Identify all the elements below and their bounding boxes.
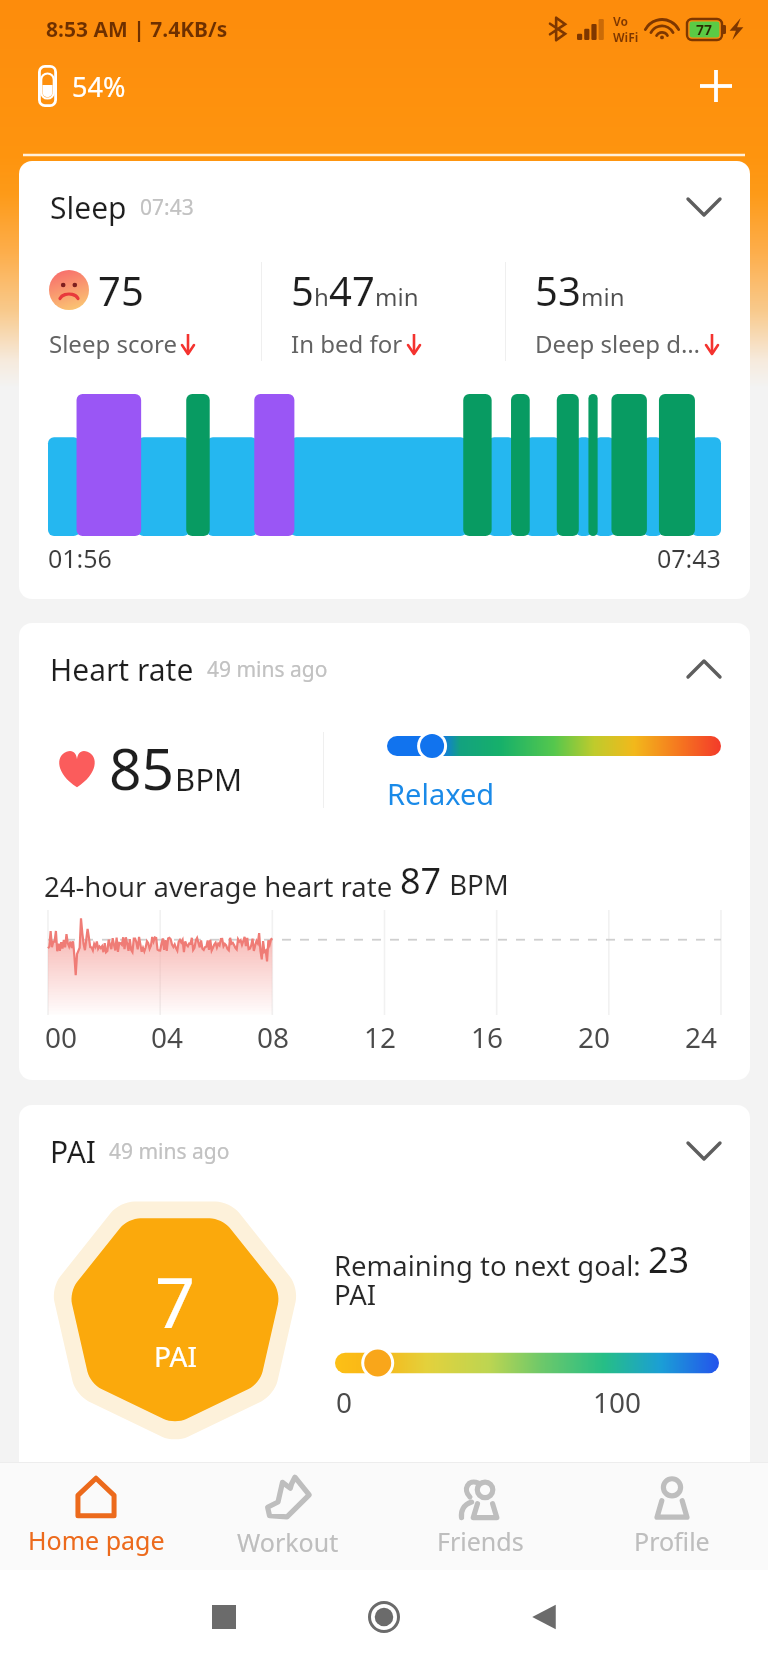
button[interactable]: Add device — [688, 58, 744, 114]
button[interactable]: Workout — [192, 1463, 384, 1570]
button[interactable]: Home page — [0, 1463, 192, 1570]
staticText: 100 — [593, 1383, 642, 1421]
staticText: h — [314, 280, 329, 313]
button[interactable]: 54% — [32, 59, 136, 113]
staticText: Heart rate — [50, 649, 194, 690]
staticText: BPM — [442, 866, 509, 903]
staticText: Sleep — [50, 187, 127, 228]
staticText: min — [581, 280, 625, 313]
staticText: 0 — [336, 1383, 353, 1421]
staticText: 01:56 — [48, 541, 112, 575]
staticText: 8:53 AM | 7.4KB/s — [46, 15, 228, 44]
staticText: 00 — [45, 1018, 78, 1056]
staticText: 16 — [471, 1018, 504, 1056]
staticText: 07:43 — [657, 541, 721, 575]
button[interactable]: Profile — [576, 1463, 768, 1570]
staticText: 24 — [685, 1018, 718, 1056]
staticText: 49 mins ago — [109, 1137, 230, 1166]
staticText: Home page — [28, 1523, 165, 1557]
staticText: 07:43 — [140, 193, 194, 222]
button[interactable]: PAI — [19, 1105, 750, 1197]
staticText: PAI — [334, 1276, 377, 1313]
staticText: PAI — [154, 1337, 197, 1375]
button[interactable]: Sleep — [19, 161, 750, 253]
button[interactable]: Heart rate — [19, 623, 750, 715]
staticText: BPM — [175, 758, 243, 800]
staticText: In bed for — [291, 327, 403, 360]
staticText: Deep sleep d… — [535, 327, 701, 360]
staticText: 5 — [291, 263, 314, 317]
staticText: 75 — [98, 263, 144, 317]
staticText: 08 — [257, 1018, 290, 1056]
staticText: 04 — [151, 1018, 184, 1056]
button[interactable]: Friends — [384, 1463, 576, 1570]
staticText: 85 — [109, 729, 175, 807]
staticText: Profile — [634, 1524, 710, 1558]
staticText: 23 — [648, 1235, 690, 1284]
staticText: 12 — [364, 1018, 397, 1056]
staticText: Vo — [613, 13, 629, 29]
staticText: 54% — [72, 68, 126, 105]
staticText: 77 — [696, 20, 713, 39]
staticText: 47 — [329, 263, 375, 317]
staticText: 7 — [155, 1253, 196, 1348]
staticText: 53 — [535, 263, 581, 317]
button[interactable]: Back — [516, 1589, 572, 1645]
staticText: PAI — [50, 1131, 96, 1172]
button[interactable]: Recent apps — [196, 1589, 252, 1645]
staticText: WiFi — [613, 29, 639, 45]
staticText: min — [375, 280, 419, 313]
staticText: Workout — [237, 1525, 339, 1559]
staticText: 87 — [400, 856, 442, 905]
staticText: Friends — [437, 1524, 524, 1558]
staticText: 20 — [578, 1018, 611, 1056]
staticText: Remaining to next goal: — [334, 1247, 648, 1284]
staticText: 49 mins ago — [207, 655, 328, 684]
staticText: Sleep score — [49, 327, 177, 360]
button[interactable]: Home — [356, 1589, 412, 1645]
staticText: Relaxed — [387, 774, 495, 813]
staticText: 24-hour average heart rate — [44, 868, 400, 905]
